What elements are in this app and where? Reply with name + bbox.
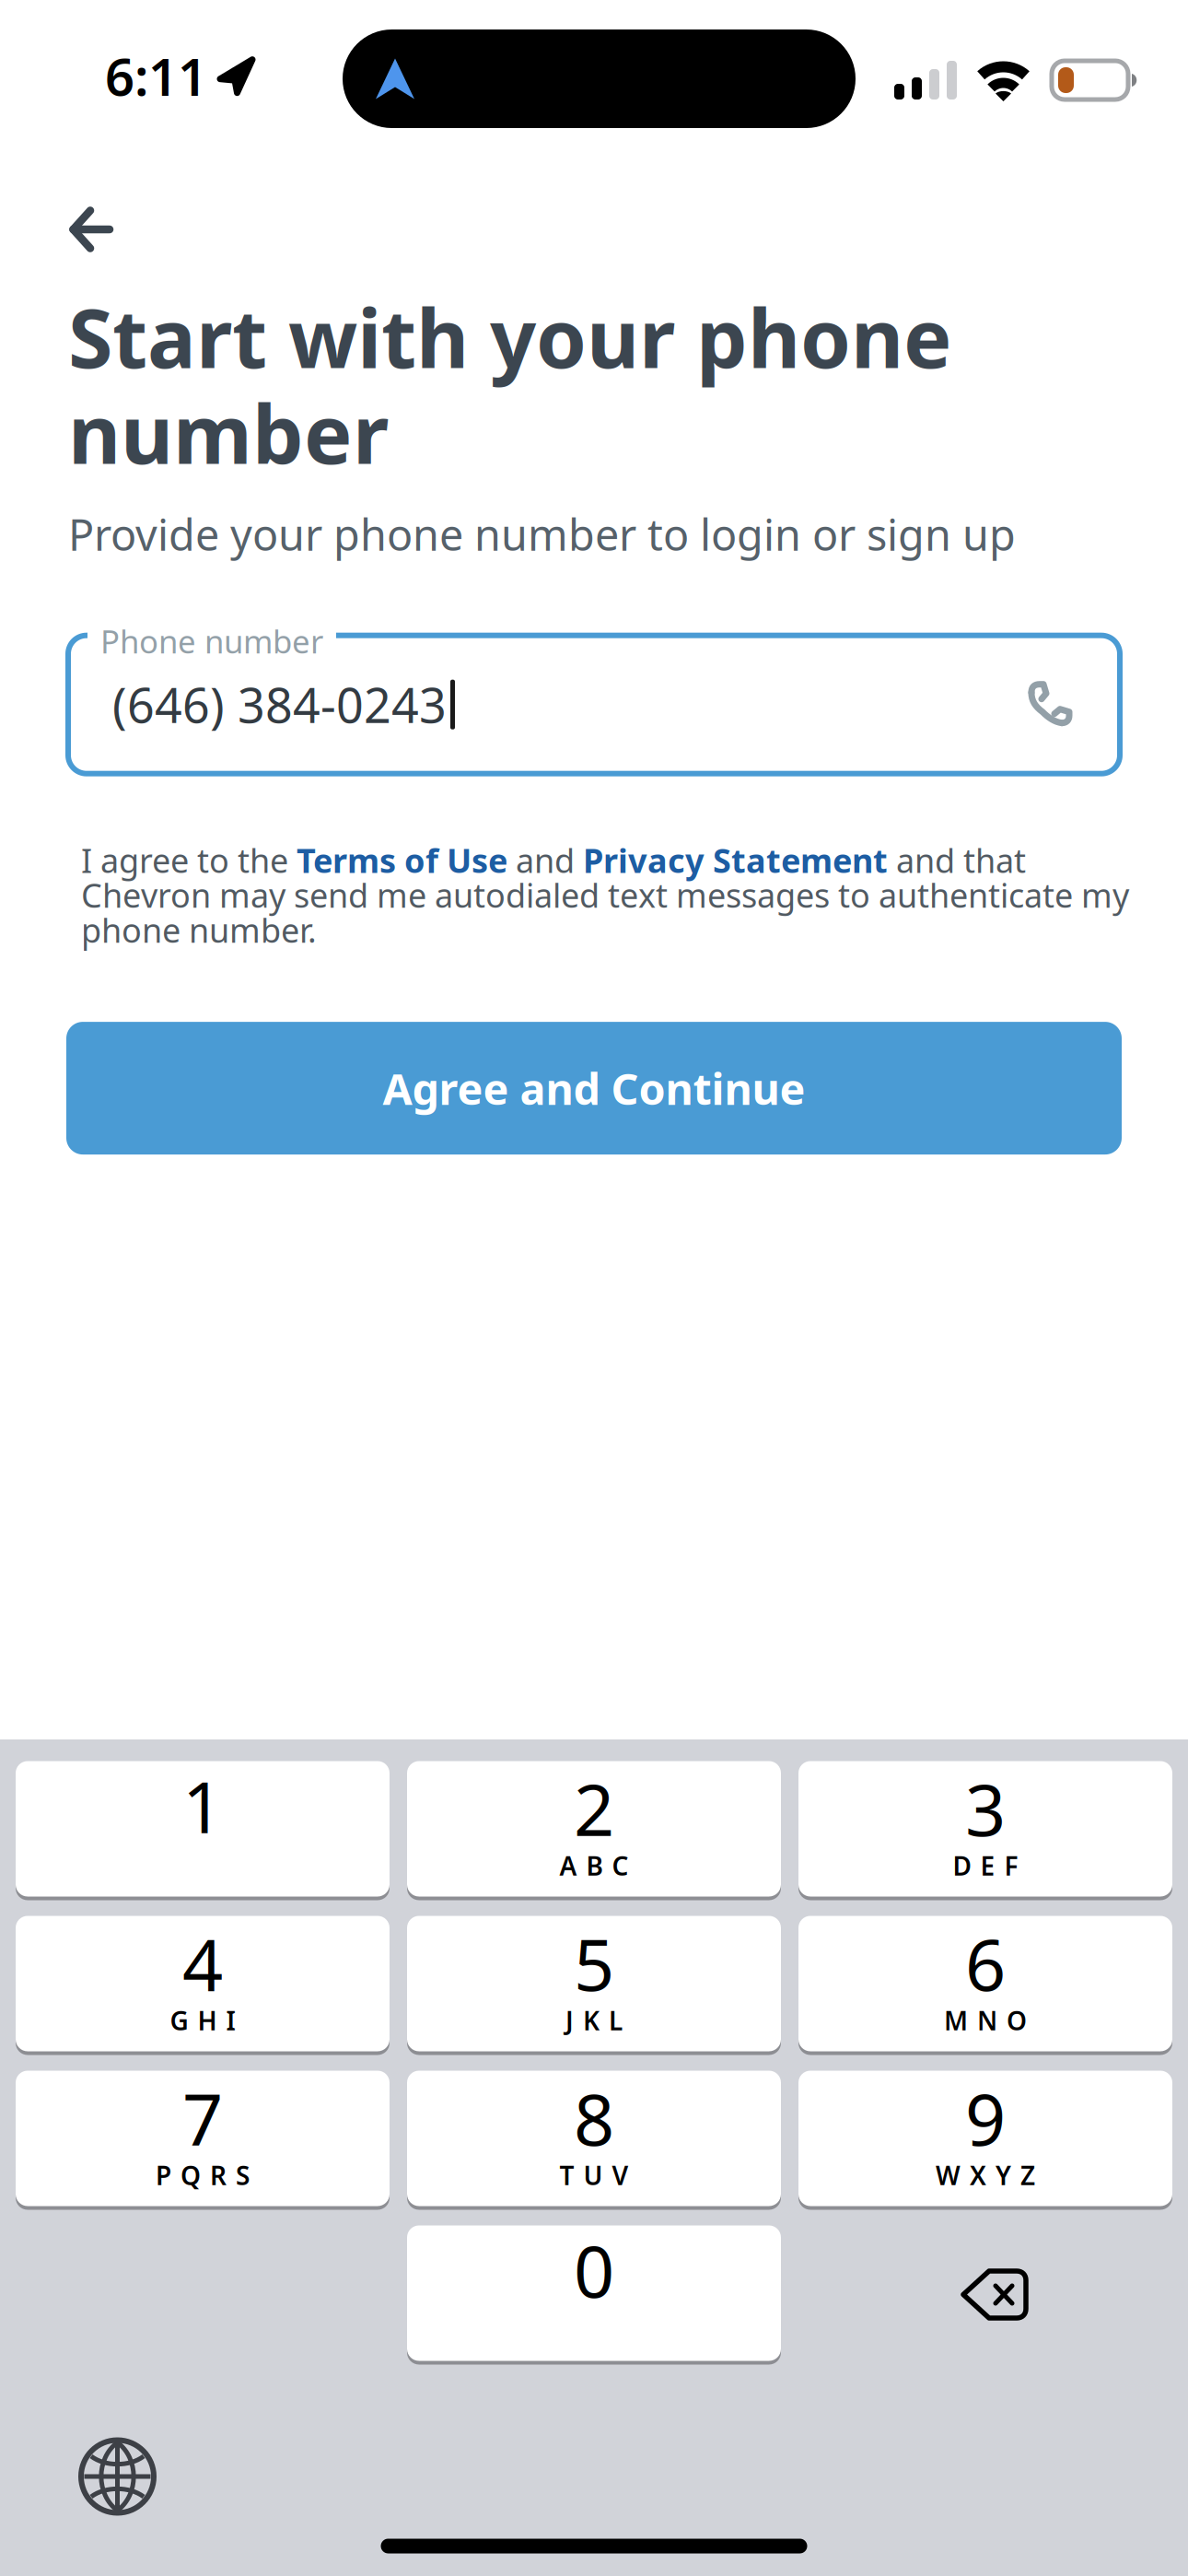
button[interactable]: 1 [16, 1761, 390, 1900]
button[interactable]: 4 [16, 1916, 390, 2055]
staticText: I agree to the [81, 838, 297, 882]
staticText: JKL [565, 2003, 623, 2037]
staticText: Phone number [100, 620, 323, 662]
button[interactable]: 3 [798, 1761, 1172, 1900]
button[interactable]: 6 [798, 1916, 1172, 2055]
button[interactable]: Delete [798, 2227, 1172, 2363]
button[interactable]: Change keyboard [63, 2422, 172, 2531]
staticText: Agree and Continue [383, 1060, 805, 1117]
staticText: and [507, 838, 583, 882]
button[interactable]: Agree and Continue [66, 1022, 1122, 1155]
staticText: GHI [170, 2003, 235, 2037]
staticText: Provide your phone number to login or si… [68, 506, 1016, 563]
button[interactable]: Terms of Use [297, 838, 507, 882]
staticText: 7 [182, 2071, 223, 2165]
staticText: 9 [965, 2071, 1006, 2165]
staticText: Start with your phone [68, 283, 952, 391]
button[interactable]: Privacy Statement [583, 838, 888, 882]
button[interactable]: 0 [407, 2225, 781, 2365]
staticText: 5 [574, 1916, 614, 2010]
staticText: Privacy Statement [583, 838, 888, 882]
button[interactable]: 9 [798, 2071, 1172, 2210]
staticText: TUV [559, 2158, 629, 2192]
button[interactable]: 2 [407, 1761, 781, 1900]
staticText: PQRS [156, 2158, 250, 2192]
staticText: 3 [965, 1761, 1006, 1856]
staticText: ABC [559, 1848, 629, 1883]
staticText: 6:11 [105, 41, 207, 110]
staticText: and that [888, 838, 1026, 882]
staticText: number [68, 379, 389, 486]
staticText: 4 [182, 1916, 223, 2010]
staticText: phone number. [81, 908, 317, 952]
staticText: (646) 384-0243 [112, 673, 447, 736]
button[interactable]: 7 [16, 2071, 390, 2210]
staticText: Terms of Use [297, 838, 507, 882]
staticText: 1 [182, 1758, 223, 1853]
staticText: Chevron may send me autodialed text mess… [81, 873, 1129, 917]
staticText: 2 [574, 1761, 614, 1856]
staticText: WXYZ [936, 2158, 1035, 2192]
button[interactable]: Back [0, 166, 146, 274]
button[interactable]: 5 [407, 1916, 781, 2055]
staticText: DEF [953, 1848, 1018, 1883]
staticText: MNO [944, 2003, 1027, 2037]
staticText: 0 [574, 2223, 614, 2317]
staticText: 8 [574, 2071, 614, 2165]
staticText: 6 [965, 1916, 1006, 2010]
button[interactable]: 8 [407, 2071, 781, 2210]
